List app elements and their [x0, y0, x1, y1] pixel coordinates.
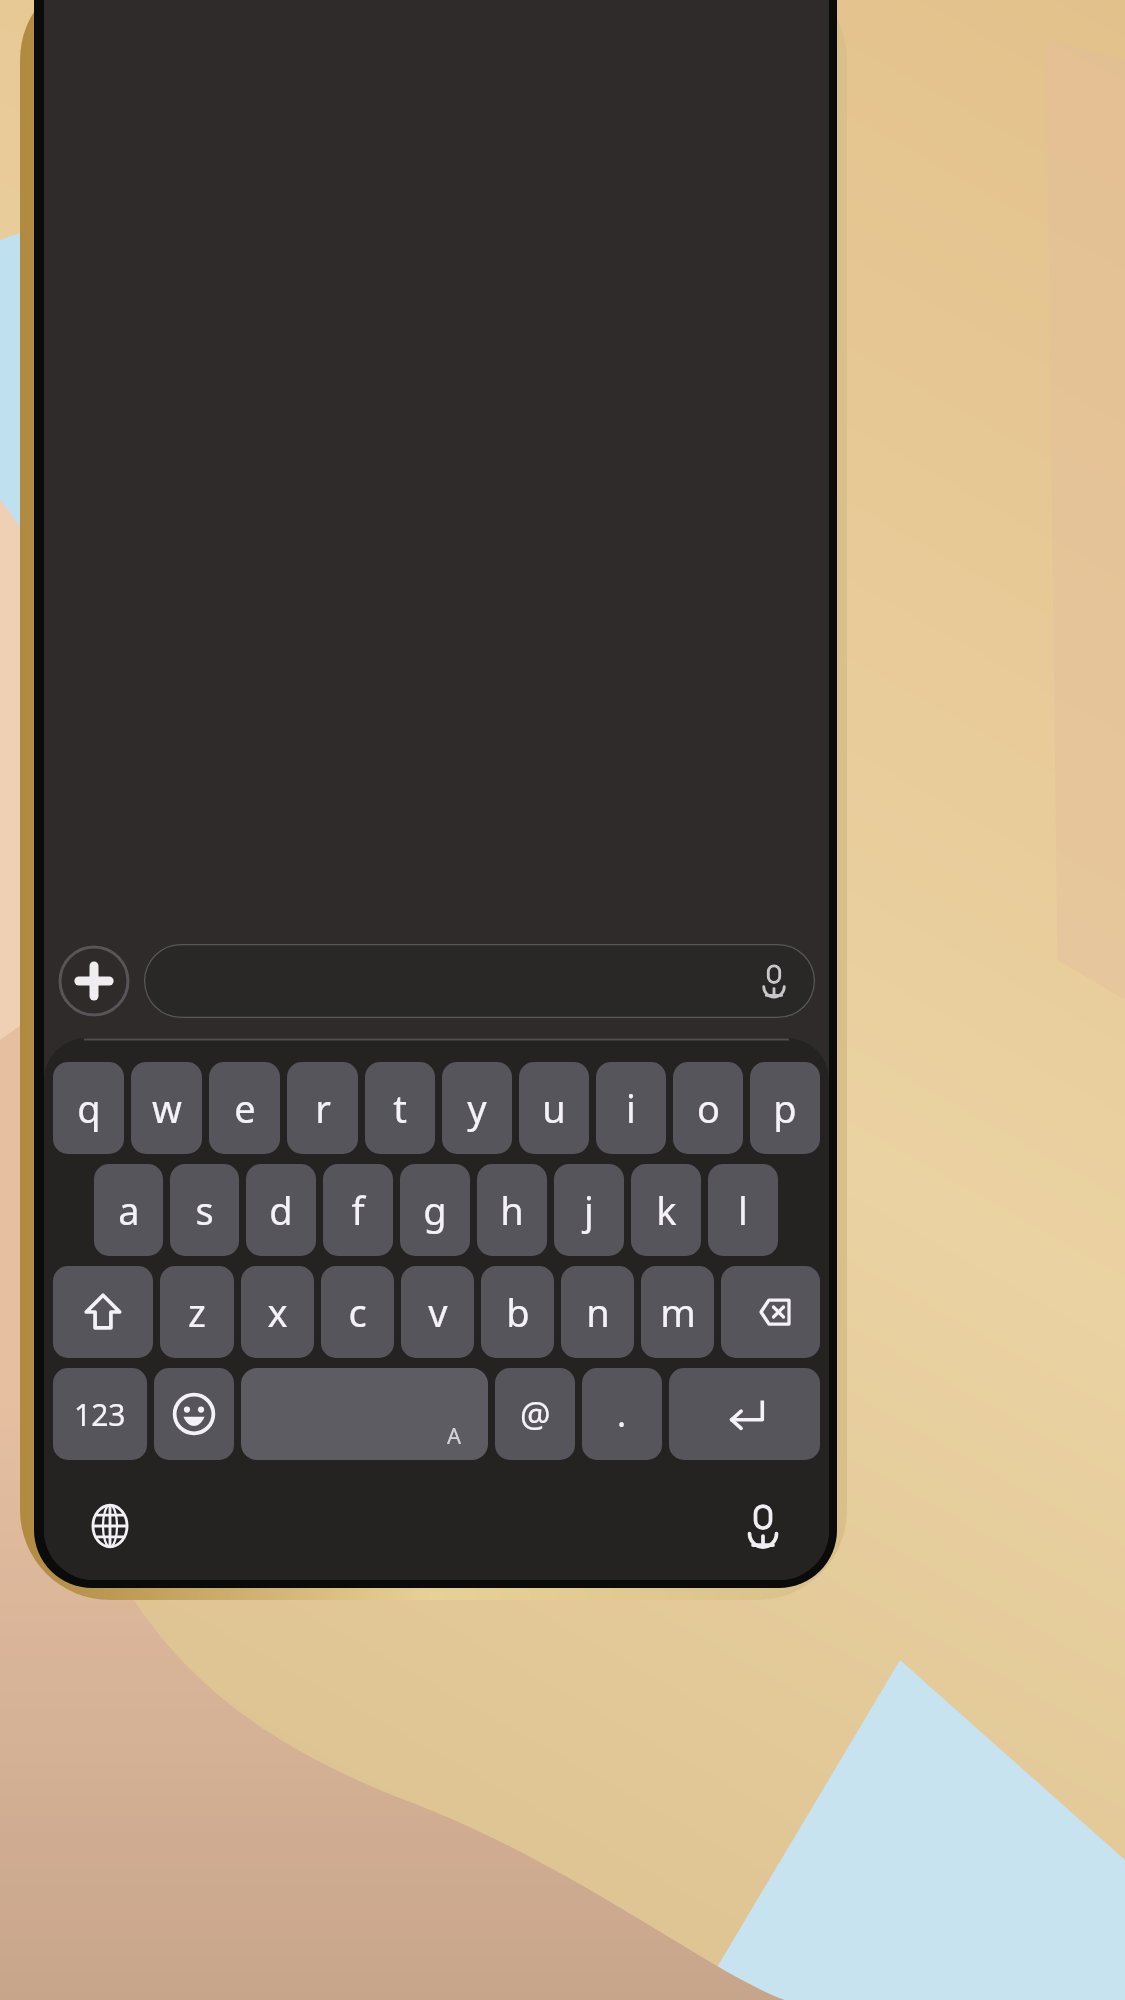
staticText: x — [267, 1286, 288, 1338]
button[interactable]: w — [131, 1062, 202, 1154]
staticText: k — [656, 1184, 677, 1236]
button[interactable]: Emoji — [154, 1368, 234, 1460]
staticText: i — [626, 1082, 636, 1134]
staticText: j — [584, 1184, 594, 1236]
button[interactable]: j — [554, 1164, 624, 1256]
button[interactable]: o — [673, 1062, 743, 1154]
staticText: o — [697, 1082, 720, 1134]
button[interactable]: z — [160, 1266, 234, 1358]
staticText: a — [118, 1184, 140, 1236]
staticText: n — [586, 1286, 610, 1338]
staticText: z — [188, 1286, 206, 1338]
button[interactable]: r — [287, 1062, 358, 1154]
staticText: . — [617, 1391, 627, 1437]
button[interactable]: Voice input — [144, 944, 815, 1018]
button[interactable]: a — [94, 1164, 163, 1256]
button[interactable]: Voice typing — [731, 1494, 795, 1558]
staticText: p — [773, 1082, 797, 1134]
button[interactable]: Space — [241, 1368, 488, 1460]
staticText: b — [506, 1286, 530, 1338]
button[interactable]: p — [750, 1062, 820, 1154]
staticText: h — [500, 1184, 524, 1236]
button[interactable]: Add attachment — [58, 945, 130, 1017]
button[interactable]: q — [53, 1062, 124, 1154]
staticText: g — [423, 1184, 447, 1236]
staticText: @ — [520, 1391, 551, 1437]
button[interactable]: Backspace — [721, 1266, 820, 1358]
button[interactable]: i — [596, 1062, 666, 1154]
staticText: t — [393, 1082, 407, 1134]
staticText: s — [195, 1184, 214, 1236]
button[interactable]: k — [631, 1164, 701, 1256]
button[interactable]: @ — [495, 1368, 575, 1460]
button[interactable]: . — [582, 1368, 662, 1460]
staticText: f — [351, 1184, 365, 1236]
button[interactable]: x — [241, 1266, 314, 1358]
button[interactable]: n — [561, 1266, 634, 1358]
staticText: d — [269, 1184, 293, 1236]
button[interactable]: s — [170, 1164, 239, 1256]
staticText: u — [542, 1082, 566, 1134]
staticText: q — [77, 1082, 101, 1134]
button[interactable]: g — [400, 1164, 470, 1256]
button[interactable]: h — [477, 1164, 547, 1256]
staticText: c — [348, 1286, 367, 1338]
staticText: l — [738, 1184, 748, 1236]
button[interactable]: t — [365, 1062, 435, 1154]
button[interactable]: Enter — [669, 1368, 820, 1460]
staticText: w — [152, 1082, 182, 1134]
staticText: e — [234, 1082, 256, 1134]
button[interactable]: v — [401, 1266, 474, 1358]
staticText: m — [660, 1286, 696, 1338]
button[interactable]: c — [321, 1266, 394, 1358]
button[interactable]: l — [708, 1164, 778, 1256]
button[interactable]: y — [442, 1062, 512, 1154]
button[interactable]: b — [481, 1266, 554, 1358]
button[interactable]: d — [246, 1164, 316, 1256]
button[interactable]: m — [641, 1266, 714, 1358]
button[interactable]: 123 — [53, 1368, 147, 1460]
staticText: 123 — [74, 1394, 126, 1435]
button[interactable]: u — [519, 1062, 589, 1154]
staticText: v — [428, 1286, 448, 1338]
button[interactable]: Shift — [53, 1266, 153, 1358]
staticText: y — [467, 1082, 487, 1134]
button[interactable]: e — [209, 1062, 280, 1154]
button[interactable]: f — [323, 1164, 393, 1256]
button[interactable]: Voice input — [755, 962, 793, 1000]
button[interactable]: Change keyboard language — [78, 1494, 142, 1558]
staticText: A — [447, 1420, 462, 1450]
staticText: r — [315, 1082, 331, 1134]
